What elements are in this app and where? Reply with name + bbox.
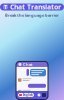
staticText: T [4,3,7,11]
staticText: Chat [23,62,33,67]
staticText: Break the language barrier [5,12,59,18]
staticText: Chat Translator [10,3,61,11]
button[interactable]: T [0,3,64,10]
staticText: English [23,93,33,97]
